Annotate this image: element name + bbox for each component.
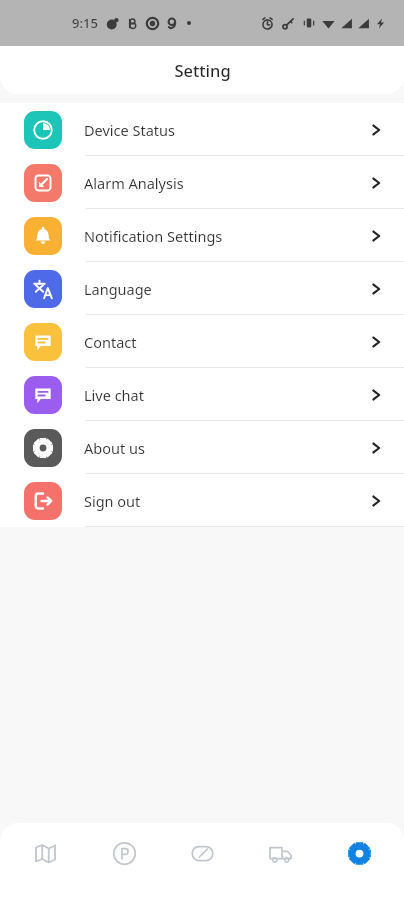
button[interactable]: Dashboard: [169, 823, 235, 883]
staticText: Language: [84, 279, 152, 299]
button[interactable]: About us: [0, 421, 404, 474]
button[interactable]: Notification Settings: [0, 209, 404, 262]
button[interactable]: Live chat: [0, 368, 404, 421]
button[interactable]: Alarm Analysis: [0, 156, 404, 209]
staticText: Contact: [84, 332, 137, 352]
staticText: About us: [84, 438, 145, 458]
staticText: Setting: [174, 59, 231, 81]
staticText: Alarm Analysis: [84, 173, 184, 193]
button[interactable]: Contact: [0, 315, 404, 368]
button[interactable]: Parking: [91, 823, 157, 883]
staticText: Live chat: [84, 385, 144, 405]
button[interactable]: Settings: [326, 823, 392, 883]
staticText: Notification Settings: [84, 226, 223, 246]
button[interactable]: Map: [12, 823, 78, 883]
button[interactable]: Sign out: [0, 474, 404, 527]
staticText: 9:15: [72, 14, 98, 32]
button[interactable]: Device Status: [0, 103, 404, 156]
staticText: Sign out: [84, 491, 141, 511]
button[interactable]: Vehicles: [247, 823, 313, 883]
button[interactable]: Language: [0, 262, 404, 315]
staticText: Device Status: [84, 120, 175, 140]
